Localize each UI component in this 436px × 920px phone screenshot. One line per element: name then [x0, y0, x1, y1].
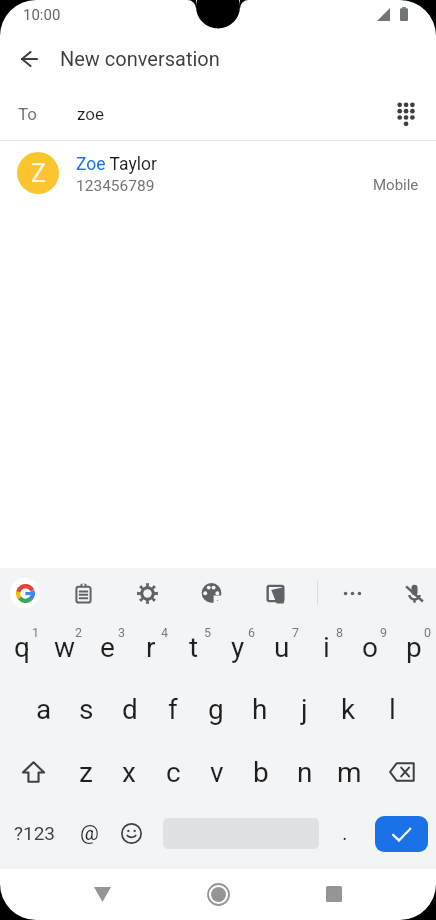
staticText: m: [337, 756, 362, 789]
button[interactable]: Themes: [190, 572, 232, 614]
button[interactable]: p: [392, 617, 436, 677]
button[interactable]: v: [195, 742, 239, 802]
button[interactable]: Voice input off: [393, 572, 435, 614]
button[interactable]: q: [0, 617, 43, 677]
button[interactable]: t: [172, 617, 216, 677]
button[interactable]: w: [43, 617, 86, 677]
button[interactable]: o: [348, 617, 392, 677]
staticText: 6: [248, 625, 256, 640]
staticText: .: [342, 821, 348, 846]
button[interactable]: l: [370, 679, 414, 739]
button[interactable]: Emoji: [110, 810, 152, 856]
button[interactable]: u: [260, 617, 304, 677]
button[interactable]: d: [108, 679, 151, 739]
staticText: h: [252, 693, 268, 726]
button[interactable]: b: [239, 742, 283, 802]
staticText: ?123: [14, 822, 56, 844]
staticText: l: [389, 693, 396, 726]
staticText: o: [362, 631, 378, 664]
staticText: k: [341, 693, 356, 726]
staticText: zoe: [77, 104, 105, 124]
button[interactable]: c: [151, 742, 195, 802]
staticText: 8: [336, 625, 344, 640]
button[interactable]: Send: [375, 816, 428, 852]
button[interactable]: Space: [156, 810, 326, 856]
staticText: q: [14, 631, 30, 664]
staticText: To: [18, 104, 38, 124]
button[interactable]: s: [65, 679, 108, 739]
staticText: n: [297, 756, 313, 789]
button[interactable]: Stickers: [254, 572, 296, 614]
staticText: a: [36, 693, 52, 726]
button[interactable]: ?123: [14, 810, 56, 856]
staticText: c: [166, 756, 181, 789]
button[interactable]: n: [283, 742, 327, 802]
staticText: 3: [118, 625, 126, 640]
staticText: Z: [31, 159, 46, 188]
staticText: s: [79, 693, 94, 726]
staticText: t: [189, 631, 199, 664]
staticText: r: [146, 631, 156, 664]
staticText: p: [406, 631, 422, 664]
button[interactable]: Home: [196, 872, 240, 916]
button[interactable]: r: [129, 617, 172, 677]
staticText: Zoe Taylor: [76, 154, 157, 175]
staticText: 2: [75, 625, 83, 640]
staticText: g: [208, 693, 224, 726]
button[interactable]: Shift: [0, 742, 64, 802]
staticText: y: [231, 631, 245, 664]
button[interactable]: x: [107, 742, 151, 802]
staticText: 1: [32, 625, 40, 640]
staticText: b: [253, 756, 269, 789]
staticText: 7: [292, 625, 300, 640]
staticText: i: [323, 631, 330, 664]
button[interactable]: m: [327, 742, 371, 802]
button[interactable]: .: [324, 810, 366, 856]
button[interactable]: Z: [0, 141, 436, 205]
button[interactable]: j: [282, 679, 326, 739]
button[interactable]: Backspace: [371, 742, 436, 802]
staticText: 9: [380, 625, 388, 640]
staticText: New conversation: [60, 47, 220, 70]
staticText: x: [122, 756, 136, 789]
staticText: 4: [161, 625, 169, 640]
staticText: @: [80, 821, 99, 846]
button[interactable]: Google: [10, 578, 40, 608]
button[interactable]: k: [326, 679, 370, 739]
button[interactable]: h: [238, 679, 282, 739]
staticText: z: [79, 756, 93, 789]
staticText: f: [168, 693, 178, 726]
button[interactable]: @: [68, 810, 110, 856]
staticText: w: [54, 631, 76, 664]
staticText: 5: [204, 625, 212, 640]
staticText: Mobile: [373, 176, 419, 194]
staticText: 0: [424, 625, 432, 640]
button[interactable]: More options: [331, 572, 373, 614]
button[interactable]: Navigate up: [9, 39, 49, 79]
button[interactable]: y: [216, 617, 260, 677]
staticText: d: [122, 693, 138, 726]
button[interactable]: i: [304, 617, 348, 677]
staticText: v: [210, 756, 224, 789]
button[interactable]: Settings: [126, 572, 168, 614]
staticText: 10:00: [23, 6, 61, 24]
staticText: u: [274, 631, 290, 664]
button[interactable]: z: [64, 742, 107, 802]
button[interactable]: e: [86, 617, 129, 677]
button[interactable]: a: [22, 679, 65, 739]
button[interactable]: Dialpad: [385, 93, 427, 135]
staticText: 123456789: [76, 177, 155, 195]
button[interactable]: g: [194, 679, 238, 739]
button[interactable]: Back: [80, 872, 124, 916]
staticText: j: [301, 693, 308, 726]
button[interactable]: Recent apps: [312, 872, 356, 916]
button[interactable]: Clipboard: [62, 572, 104, 614]
staticText: e: [100, 631, 115, 664]
button[interactable]: f: [151, 679, 194, 739]
